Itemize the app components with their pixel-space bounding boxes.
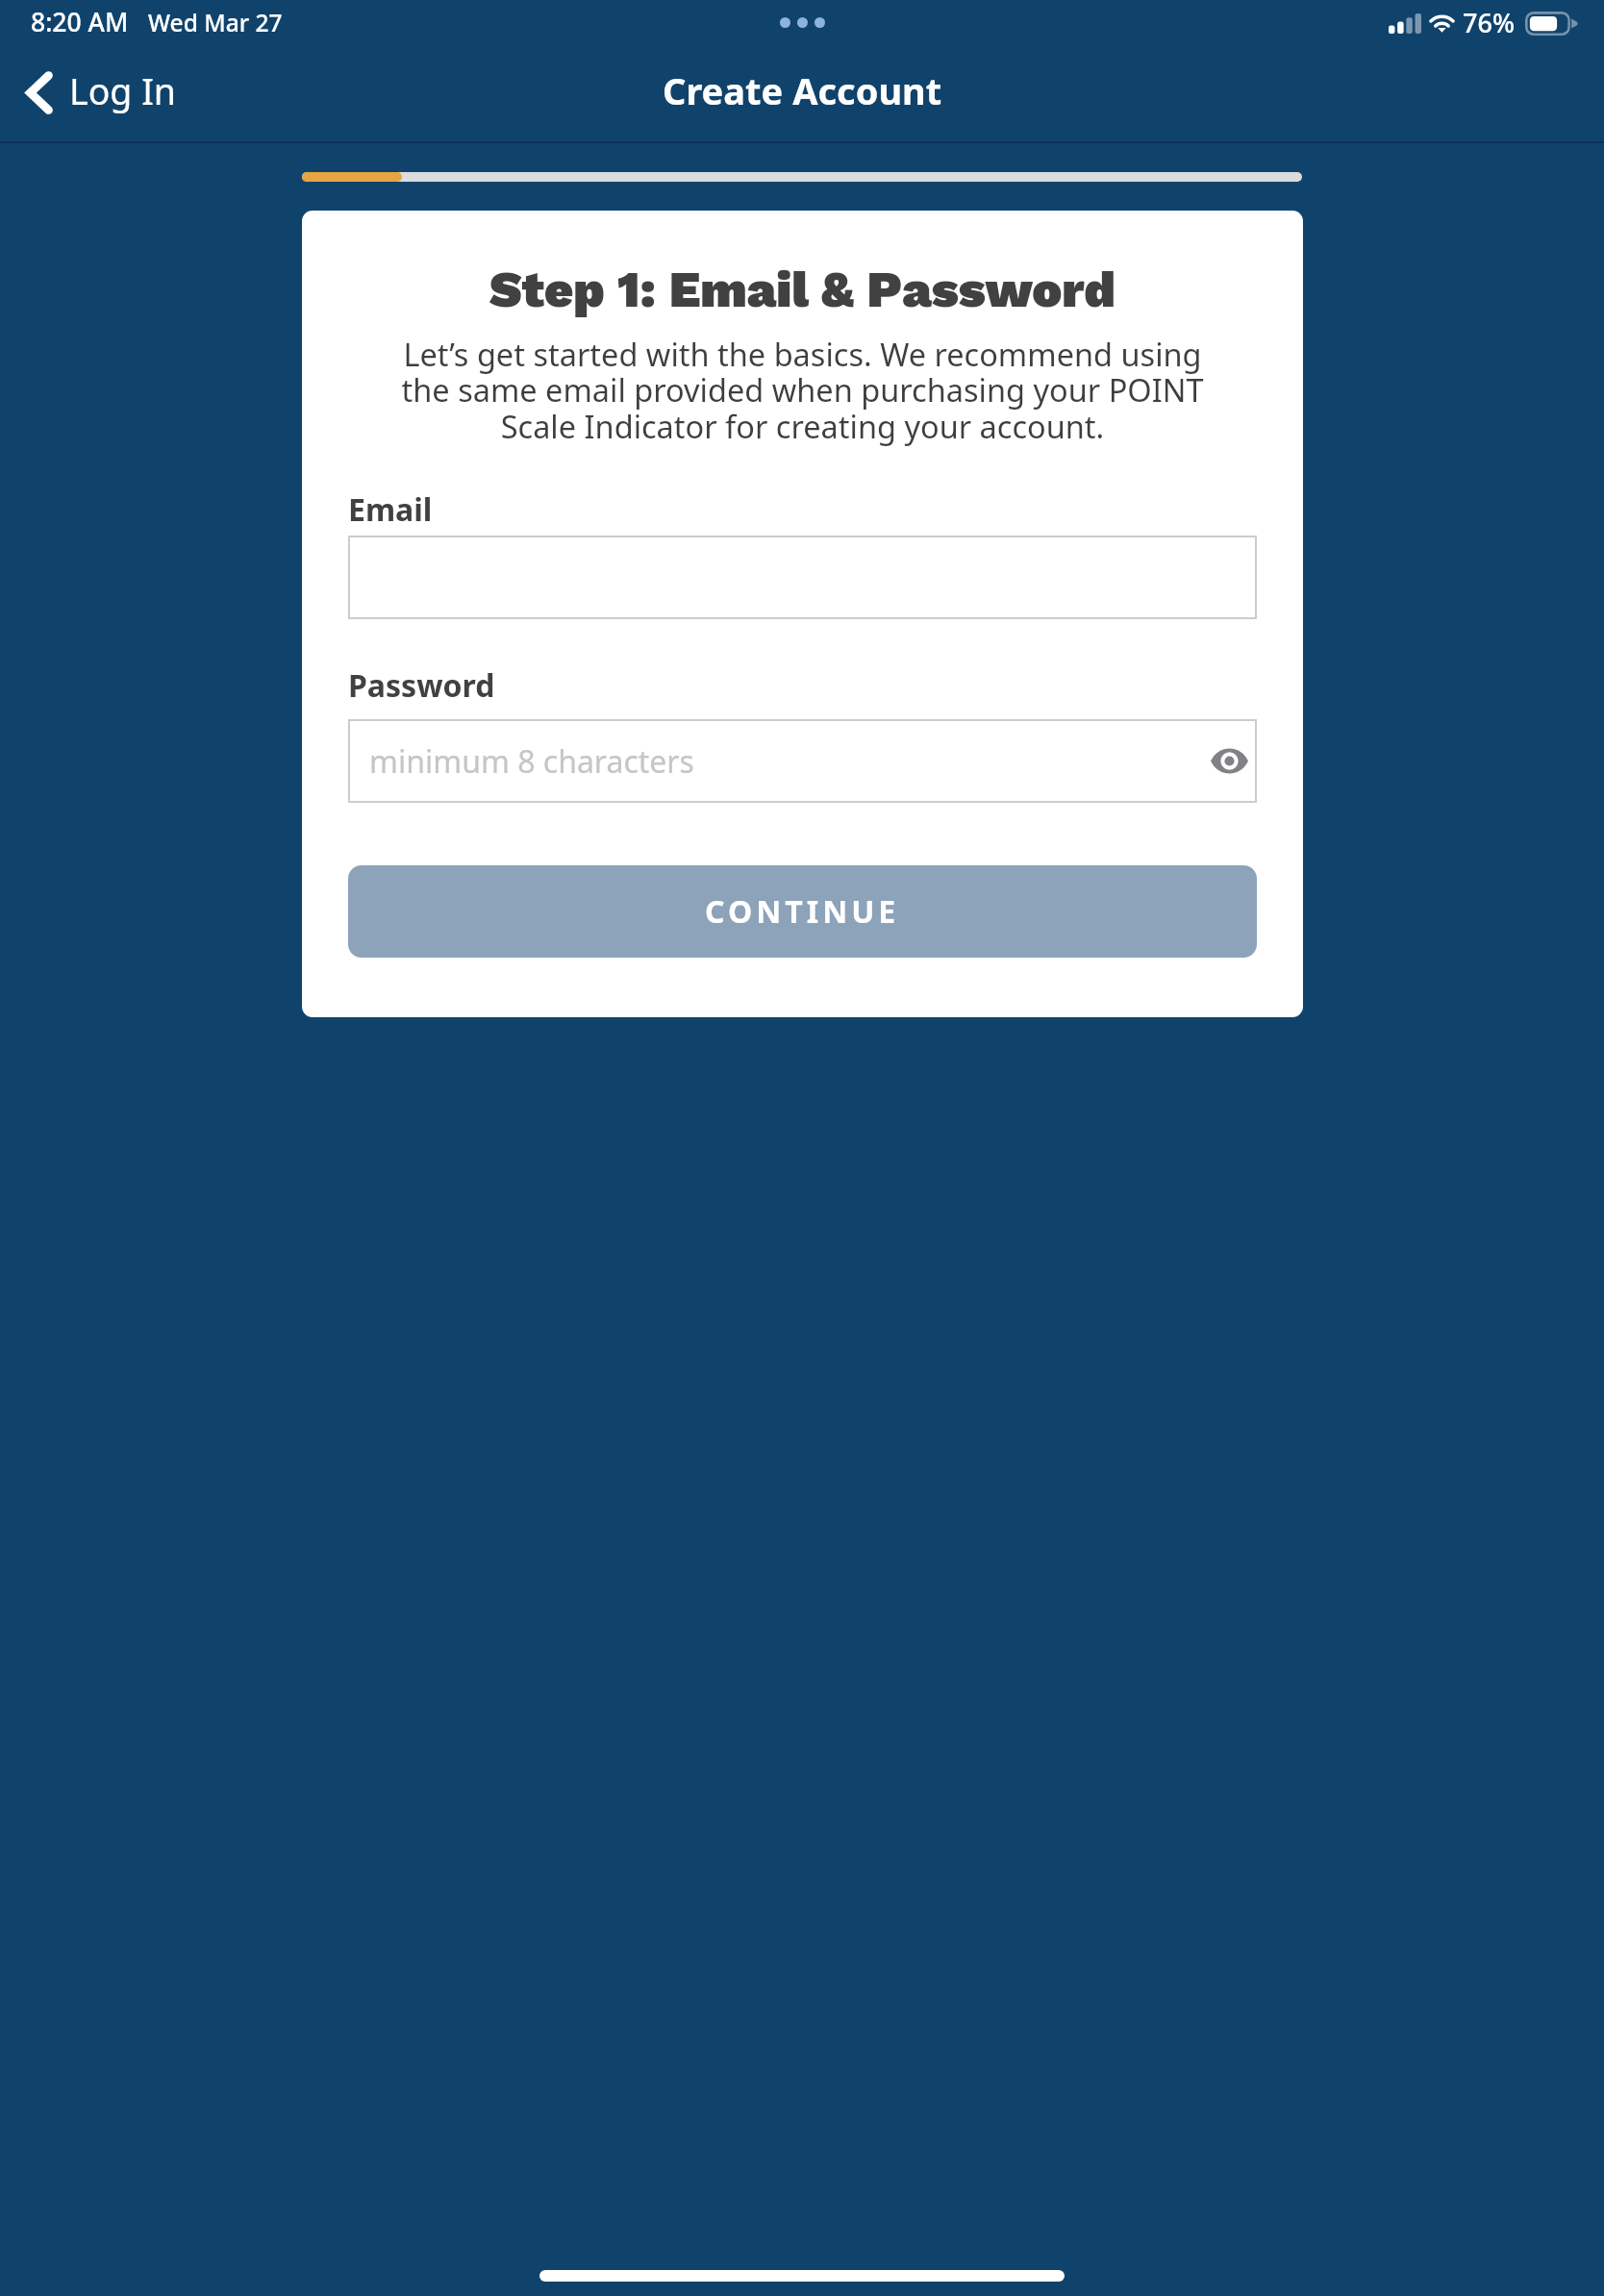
staticText: CONTINUE	[705, 890, 900, 933]
button[interactable]: CONTINUE	[348, 865, 1257, 958]
staticText: Create Account	[663, 65, 942, 115]
staticText: Step 1: Email & Password	[302, 261, 1303, 319]
button[interactable]: Show password	[1203, 739, 1256, 783]
staticText: minimum 8 characters	[369, 740, 694, 783]
button[interactable]: Log In	[3, 62, 200, 123]
staticText: Log In	[69, 66, 177, 115]
staticText: 76%	[1463, 5, 1515, 40]
button[interactable]: minimum 8 characters	[348, 719, 1257, 803]
staticText: Let’s get started with the basics. We re…	[302, 333, 1303, 448]
staticText: Wed Mar 27	[148, 7, 283, 38]
staticText: 8:20 AM	[31, 5, 129, 39]
staticText: Password	[348, 664, 495, 707]
staticText: Email	[348, 488, 433, 531]
button[interactable]	[348, 536, 1257, 619]
